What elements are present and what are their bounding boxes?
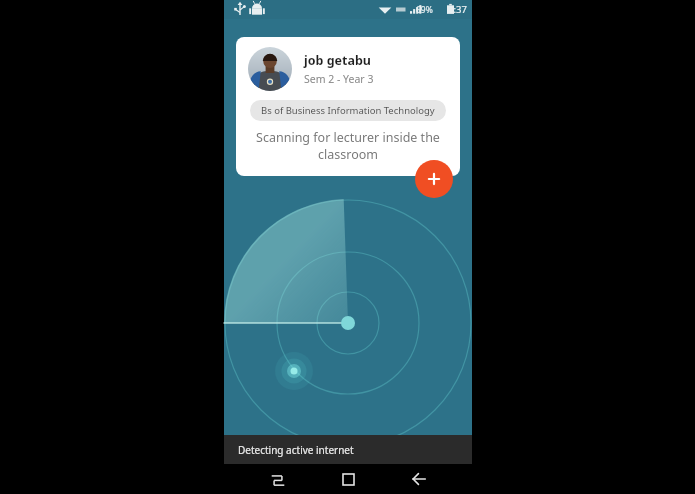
button[interactable]: job getabu [236,37,460,176]
staticText: 8:37 [448,3,467,16]
staticText: Detecting active internet [238,443,354,457]
button[interactable]: Bs of Business Information Technology [250,100,446,121]
button[interactable]: Recents [261,464,295,494]
button[interactable]: Detecting active internet [224,435,472,464]
staticText: Bs of Business Information Technology [261,104,435,117]
button[interactable]: Back [402,464,436,494]
staticText: Scanning for lecturer inside the classro… [254,129,442,162]
button[interactable]: Add [415,160,453,198]
staticText: 69% [416,4,433,16]
button[interactable]: Home [331,464,365,494]
staticText: Sem 2 - Year 3 [304,72,374,86]
staticText: job getabu [304,52,371,69]
